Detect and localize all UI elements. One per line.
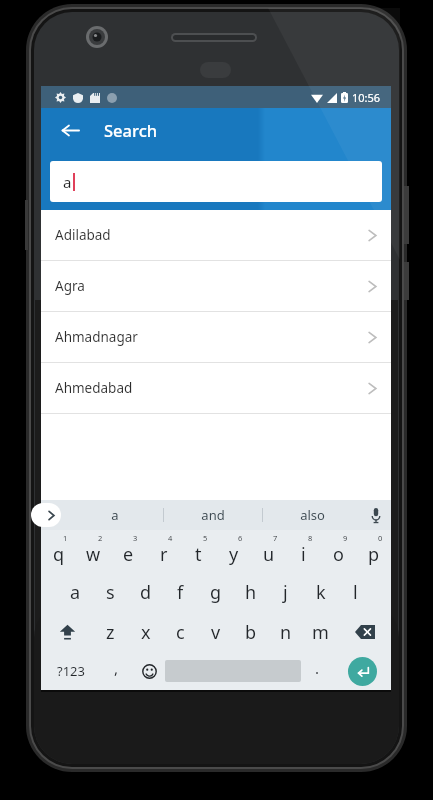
button[interactable]: j [268,572,303,612]
staticText: . [315,658,320,678]
staticText: and [201,506,225,524]
button[interactable]: Backspace [338,612,391,652]
button[interactable]: s [93,572,128,612]
staticText: z [106,620,115,645]
staticText: g [210,580,222,605]
button[interactable]: Agra [41,261,391,311]
staticText: a [70,580,81,605]
button[interactable]: Shift [41,612,93,652]
staticText: 4 [168,533,173,543]
staticText: s [106,580,115,605]
button[interactable]: also [263,500,361,530]
staticText: v [211,620,221,645]
staticText: o [333,542,344,567]
staticText: Search [104,119,158,141]
staticText: 8 [308,533,313,543]
staticText: p [368,542,380,567]
staticText: Ahmedabad [55,379,368,397]
button[interactable]: More suggestions [31,503,61,527]
staticText: ?123 [57,662,85,680]
button[interactable]: 8 [286,530,321,572]
staticText: also [300,506,325,524]
button[interactable]: g [198,572,233,612]
staticText: m [312,620,329,645]
button[interactable]: Switch keyboard [333,656,373,692]
staticText: Ahmadnagar [55,328,368,346]
staticText: w [86,542,101,567]
button[interactable]: m [303,612,338,652]
staticText: 7 [273,533,278,543]
staticText: a [63,172,72,192]
button[interactable]: , [100,652,133,690]
staticText: Agra [55,277,368,295]
button[interactable]: . [301,652,333,690]
button[interactable]: and [164,500,262,530]
button[interactable]: a [66,500,163,530]
staticText: d [140,580,152,605]
button[interactable]: 0 [356,530,391,572]
button[interactable]: 1 [41,530,76,572]
button[interactable]: c [163,612,198,652]
button[interactable]: n [268,612,303,652]
button[interactable]: Emoji [133,652,165,690]
button[interactable]: Enter [333,652,391,690]
staticText: r [160,542,168,567]
staticText: y [229,542,239,567]
button[interactable]: k [303,572,338,612]
staticText: f [177,580,184,605]
button[interactable]: z [93,612,128,652]
staticText: 1 [63,533,68,543]
staticText: 0 [378,533,383,543]
button[interactable]: Ahmedabad [41,363,391,413]
staticText: x [141,620,151,645]
staticText: b [245,620,257,645]
button[interactable]: a [58,572,93,612]
staticText: 10:56 [352,90,381,105]
staticText: 5 [203,533,208,543]
staticText: c [176,620,185,645]
staticText: , [114,658,119,678]
staticText: t [195,542,202,567]
button[interactable]: h [233,572,268,612]
staticText: u [263,542,275,567]
staticText: e [123,542,134,567]
button[interactable]: Voice input [361,500,391,530]
staticText: Adilabad [55,226,368,244]
button[interactable]: f [163,572,198,612]
button[interactable]: 7 [251,530,286,572]
button[interactable]: Home [196,656,236,692]
button[interactable]: Adilabad [41,210,391,260]
staticText: 2 [98,533,103,543]
button[interactable]: ?123 [41,652,100,690]
button[interactable]: l [338,572,373,612]
button[interactable]: 3 [111,530,146,572]
button[interactable]: a [50,161,382,202]
staticText: 9 [343,533,348,543]
button[interactable]: Ahmadnagar [41,312,391,362]
staticText: n [280,620,292,645]
staticText: k [316,580,326,605]
staticText: a [111,506,119,524]
staticText: l [353,580,358,605]
button[interactable]: 9 [321,530,356,572]
button[interactable]: v [198,612,233,652]
staticText: q [53,542,65,567]
button[interactable]: 5 [181,530,216,572]
button[interactable]: 6 [216,530,251,572]
button[interactable]: x [128,612,163,652]
button[interactable]: 4 [146,530,181,572]
button[interactable]: Hide keyboard [111,656,151,692]
staticText: j [283,580,288,605]
button[interactable]: b [233,612,268,652]
staticText: i [301,542,306,567]
staticText: 6 [238,533,243,543]
button[interactable]: d [128,572,163,612]
staticText: 3 [133,533,138,543]
button[interactable]: Back [53,113,87,147]
staticText: h [245,580,257,605]
button[interactable]: 2 [76,530,111,572]
button[interactable]: Recent apps [289,656,329,692]
